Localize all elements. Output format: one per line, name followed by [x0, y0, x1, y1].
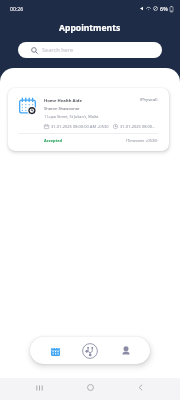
staticText: 6% — [160, 5, 168, 12]
button[interactable]: Search here — [18, 42, 162, 58]
staticText: Sharon Shawoonar — [44, 106, 80, 111]
staticText: 1 Lupa Street, St Julian's, Malta — [44, 114, 99, 119]
staticText: Search here — [42, 46, 74, 54]
button[interactable]: Services — [79, 340, 101, 362]
button[interactable]: Home — [81, 378, 100, 397]
staticText: 31-01-2025 08:00... — [120, 124, 156, 129]
staticText: 00:26 — [10, 5, 24, 12]
staticText: Appointments — [59, 22, 121, 34]
button[interactable]: Recents — [30, 378, 49, 397]
button[interactable]: Back — [131, 378, 150, 397]
staticText: Home Health Aide — [44, 98, 82, 104]
staticText: 31-01-2025 08:00:00 AM +0530 — [51, 124, 109, 129]
button[interactable]: Profile — [115, 340, 137, 362]
staticText: (Physical) — [140, 97, 158, 102]
staticText: Accepted — [44, 138, 62, 143]
button[interactable]: Home Health Aide — [8, 88, 169, 151]
staticText: (Timezone +0530) — [126, 138, 158, 143]
button[interactable]: Appointments — [44, 340, 66, 362]
